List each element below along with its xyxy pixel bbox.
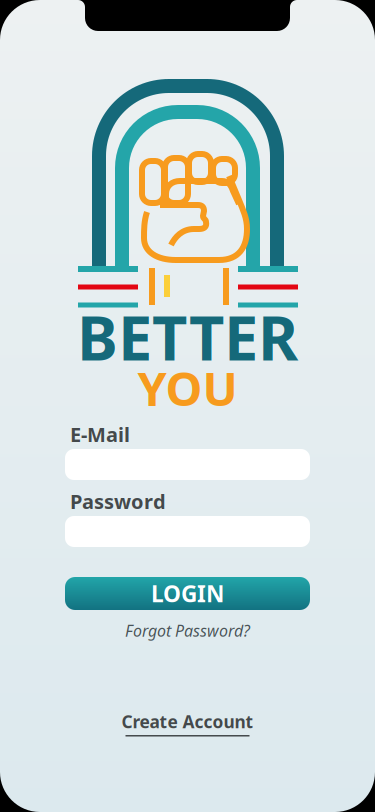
staticText: Create Account — [121, 710, 253, 733]
button[interactable]: Forgot Password? — [65, 620, 310, 641]
staticText: Password — [70, 488, 166, 515]
button[interactable]: LOGIN — [65, 577, 310, 610]
staticText: YOU — [137, 357, 237, 419]
staticText: BETTER — [77, 296, 298, 377]
staticText: Forgot Password? — [125, 620, 250, 641]
staticText: E-Mail — [70, 421, 130, 448]
button[interactable]: Create Account — [65, 710, 310, 736]
staticText: LOGIN — [151, 578, 224, 608]
